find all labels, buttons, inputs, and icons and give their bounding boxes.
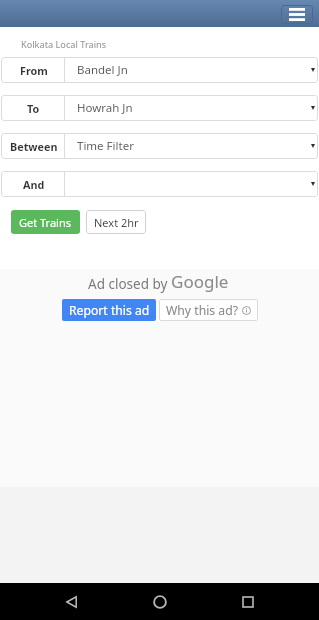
button[interactable]: Why this ad? — [159, 299, 258, 321]
staticText: Howrah Jn — [77, 100, 133, 116]
staticText: Time Filter — [77, 138, 134, 154]
staticText: Bandel Jn — [77, 62, 128, 78]
button[interactable]: Get Trains — [11, 210, 80, 234]
button[interactable]: And — [1, 171, 318, 197]
button[interactable]: From — [1, 57, 318, 83]
button[interactable]: Recents — [233, 587, 262, 616]
staticText: Report this ad — [69, 302, 150, 319]
staticText: Get Trains — [19, 215, 72, 230]
button[interactable]: Next 2hr — [86, 210, 146, 234]
button[interactable]: Report this ad — [62, 299, 156, 321]
staticText: Kolkata Local Trains — [21, 38, 107, 51]
staticText: Ad closed by — [88, 275, 171, 293]
staticText: And — [23, 177, 45, 192]
button[interactable]: Between — [1, 133, 318, 159]
staticText: Google — [171, 270, 229, 293]
staticText: Between — [10, 139, 58, 154]
button[interactable]: Back — [57, 587, 86, 616]
staticText: From — [20, 63, 48, 78]
button[interactable]: To — [1, 95, 318, 121]
staticText: Why this ad? — [166, 302, 238, 319]
staticText: To — [27, 101, 40, 116]
button[interactable]: Menu — [281, 5, 313, 24]
button[interactable]: Home — [145, 587, 174, 616]
staticText: Next 2hr — [94, 215, 139, 230]
